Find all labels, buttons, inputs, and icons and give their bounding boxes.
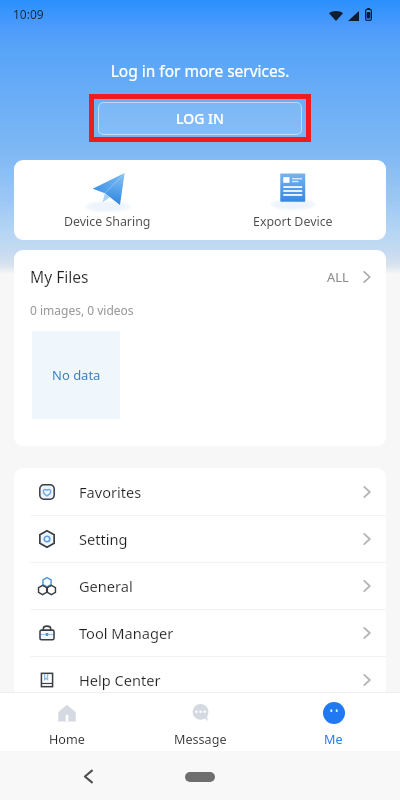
staticText: 10:09 xyxy=(13,6,44,22)
button[interactable]: Help Center xyxy=(14,656,386,703)
button[interactable]: Tool Manager xyxy=(14,609,386,656)
button[interactable]: Home xyxy=(185,772,215,782)
button[interactable]: LOG IN xyxy=(98,102,302,135)
button[interactable]: Back xyxy=(74,762,102,790)
staticText: Export Device xyxy=(253,213,333,230)
staticText: Favorites xyxy=(79,482,142,502)
staticText: General xyxy=(79,576,133,596)
button[interactable]: General xyxy=(14,562,386,609)
button[interactable]: ALL xyxy=(323,264,378,289)
staticText: Home xyxy=(49,731,85,748)
staticText: Device Sharing xyxy=(64,213,151,230)
button[interactable]: Me xyxy=(267,693,400,751)
button[interactable]: No data xyxy=(32,331,120,419)
staticText: ALL xyxy=(327,268,349,285)
button[interactable]: Setting xyxy=(14,515,386,562)
staticText: Message xyxy=(174,731,227,748)
button[interactable]: Home xyxy=(0,693,134,751)
staticText: Me xyxy=(324,731,343,748)
button[interactable]: Device Sharing xyxy=(14,160,200,240)
staticText: 0 images, 0 videos xyxy=(30,302,134,318)
staticText: No data xyxy=(52,366,101,384)
staticText: Log in for more services. xyxy=(0,60,400,81)
staticText: LOG IN xyxy=(176,109,224,128)
button[interactable]: Favorites xyxy=(14,468,386,515)
button[interactable]: Export Device xyxy=(200,160,386,240)
staticText: Setting xyxy=(79,529,128,549)
staticText: Tool Manager xyxy=(79,623,174,643)
staticText: My Files xyxy=(30,266,89,287)
button[interactable]: Message xyxy=(134,693,267,751)
staticText: Help Center xyxy=(79,670,161,690)
